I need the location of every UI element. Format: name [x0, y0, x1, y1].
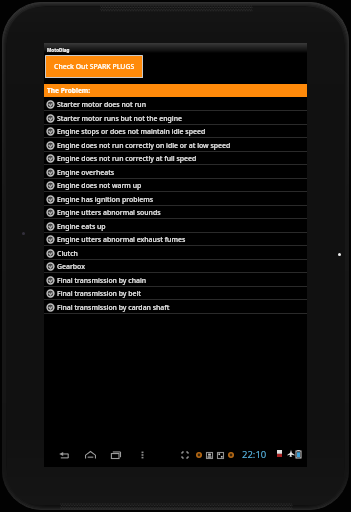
button[interactable]: Engine does not run correctly on idle or… [44, 138, 307, 152]
staticText: 22:10 [242, 448, 267, 461]
staticText: Clutch [57, 249, 78, 258]
staticText: Engine has ignition problems [57, 195, 154, 204]
staticText: Final transmission by cardan shaft [57, 303, 170, 312]
button[interactable]: Engine has ignition problems [44, 192, 307, 206]
staticText: Starter motor runs but not the engine [57, 114, 182, 123]
staticText: Engine utters abnormal exhaust fumes [57, 235, 186, 244]
other: Fullscreen [182, 452, 188, 458]
other: Screenshot [217, 452, 224, 459]
button[interactable]: Final transmission by belt [44, 286, 307, 300]
staticText: Engine does not run correctly at full sp… [57, 154, 197, 163]
staticText: The Problem: [47, 86, 91, 95]
staticText: Engine stops or does not maintain idle s… [57, 127, 206, 136]
staticText: Engine eats up [57, 222, 106, 231]
button[interactable]: Check Out SPARK PLUGS [46, 56, 142, 77]
button[interactable]: Engine eats up [44, 219, 307, 233]
button[interactable]: Starter motor does not run [44, 97, 307, 111]
staticText: Gearbox [57, 262, 85, 271]
button[interactable]: Back [54, 444, 74, 466]
button[interactable]: Final transmission by chain [44, 273, 307, 287]
staticText: Final transmission by chain [57, 276, 147, 285]
other: Sync [196, 452, 202, 458]
button[interactable]: Final transmission by cardan shaft [44, 300, 307, 314]
staticText: Starter motor does not run [57, 100, 146, 109]
button[interactable]: Engine utters abnormal sounds [44, 205, 307, 219]
button[interactable]: Engine utters abnormal exhaust fumes [44, 232, 307, 246]
button[interactable]: Engine does not warm up [44, 178, 307, 192]
staticText: Check Out SPARK PLUGS [54, 62, 135, 71]
button[interactable]: Home [80, 444, 100, 466]
staticText: Final transmission by belt [57, 289, 141, 298]
other: Storage [206, 452, 213, 459]
button[interactable]: Starter motor runs but not the engine [44, 111, 307, 125]
button[interactable]: Engine overheats [44, 165, 307, 179]
button[interactable]: Engine stops or does not maintain idle s… [44, 124, 307, 138]
button[interactable]: More options [132, 444, 152, 466]
button[interactable]: Recent apps [106, 444, 126, 466]
other: Sync [228, 452, 234, 458]
staticText: Engine overheats [57, 168, 115, 177]
staticText: Engine does not warm up [57, 181, 142, 190]
staticText: MotoDiag [47, 47, 70, 53]
staticText: Engine does not run correctly on idle or… [57, 141, 231, 150]
button[interactable]: Engine does not run correctly at full sp… [44, 151, 307, 165]
button[interactable]: Gearbox [44, 259, 307, 273]
button[interactable]: Clutch [44, 246, 307, 260]
staticText: Engine utters abnormal sounds [57, 208, 161, 217]
